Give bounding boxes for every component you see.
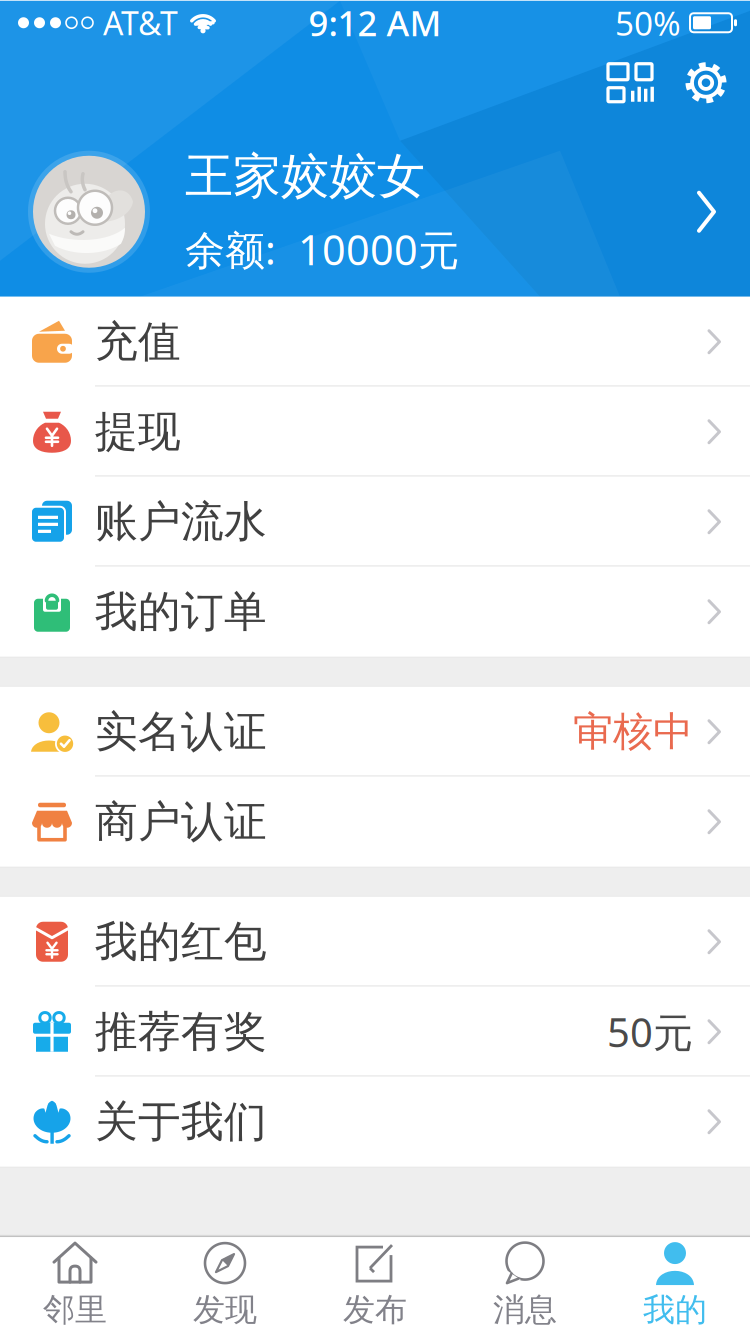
button[interactable]: 关于我们: [0, 1077, 750, 1167]
staticText: 我的红包: [95, 915, 267, 968]
button[interactable]: 账户流水: [0, 477, 750, 567]
staticText: 邻里: [43, 1290, 107, 1329]
button[interactable]: 邻里: [0, 1238, 150, 1333]
staticText: 50元: [607, 1005, 693, 1058]
staticText: 50%: [615, 1, 681, 45]
button[interactable]: 推荐有奖: [0, 987, 750, 1077]
staticText: 账户流水: [95, 495, 267, 548]
staticText: 10000元: [298, 222, 459, 277]
staticText: 王家姣姣女: [185, 147, 425, 206]
staticText: 9:12 AM: [308, 0, 441, 46]
button[interactable]: 发现: [150, 1238, 300, 1333]
staticText: 商户认证: [95, 795, 267, 848]
button[interactable]: 消息: [450, 1238, 600, 1333]
button[interactable]: 我的: [600, 1238, 750, 1333]
button[interactable]: 商户认证: [0, 777, 750, 867]
button[interactable]: 我的订单: [0, 567, 750, 657]
button[interactable]: 实名认证: [0, 687, 750, 777]
button[interactable]: 充值: [0, 297, 750, 387]
button[interactable]: Settings: [682, 59, 730, 107]
button[interactable]: 发布: [300, 1238, 450, 1333]
staticText: 发现: [193, 1290, 257, 1329]
staticText: 关于我们: [95, 1095, 267, 1148]
button[interactable]: Scan QR code: [606, 57, 656, 109]
button[interactable]: 王家姣姣女: [0, 151, 750, 273]
staticText: 实名认证: [95, 705, 267, 758]
staticText: 余额:: [185, 223, 276, 276]
staticText: 我的订单: [95, 585, 267, 638]
staticText: 我的: [643, 1290, 707, 1329]
button[interactable]: 提现: [0, 387, 750, 477]
staticText: 审核中: [573, 707, 693, 756]
staticText: 推荐有奖: [95, 1005, 267, 1058]
staticText: 消息: [493, 1290, 557, 1329]
staticText: 提现: [95, 405, 181, 458]
staticText: 充值: [95, 315, 181, 368]
staticText: AT&T: [103, 1, 178, 44]
button[interactable]: 我的红包: [0, 897, 750, 987]
staticText: 发布: [343, 1290, 407, 1329]
